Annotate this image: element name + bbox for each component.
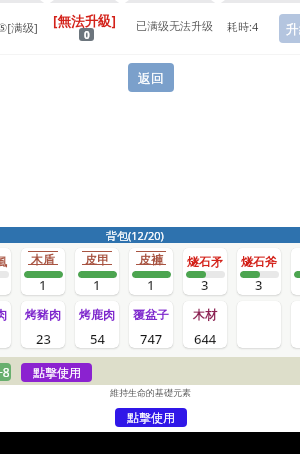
staticText: 樹皮風 — [0, 254, 7, 269]
button[interactable]: 燧石 — [291, 248, 300, 295]
staticText: 0 — [84, 28, 90, 41]
button[interactable]: 烤鹿肉 — [75, 301, 119, 348]
staticText: 皮甲 — [85, 252, 109, 267]
staticText: 木材 — [193, 307, 217, 322]
button[interactable]: 皮褲 — [129, 248, 173, 295]
staticText: 覆盆子 — [133, 307, 169, 322]
button[interactable]: 返回 — [128, 63, 174, 92]
staticText: 點擊使用 — [33, 365, 81, 380]
staticText: 已满级无法升级 — [136, 19, 213, 33]
button[interactable]: 木盾 — [21, 248, 65, 295]
staticText: 23 — [36, 330, 51, 348]
button[interactable]: 覆盆子 — [129, 301, 173, 348]
button[interactable]: 點擊使用 — [21, 363, 92, 382]
staticText: 烤牛肉 — [0, 307, 7, 322]
button[interactable]: 木材 — [183, 301, 227, 348]
staticText: 燧石斧 — [241, 254, 277, 269]
staticText: 皮褲 — [139, 252, 163, 267]
button[interactable]: 燧石斧 — [237, 248, 281, 295]
staticText: 點擊使用 — [127, 410, 175, 425]
staticText: 644 — [194, 330, 217, 348]
staticText: 747 — [140, 330, 163, 348]
button[interactable]: 點擊使用 — [115, 408, 187, 427]
staticText: 燧石矛 — [187, 254, 223, 269]
staticText: 木盾 — [31, 252, 55, 267]
button[interactable]: 燧石矛 — [183, 248, 227, 295]
staticText: 54 — [90, 330, 105, 348]
button[interactable] — [291, 301, 300, 348]
staticText: [無法升級] — [53, 12, 116, 30]
button[interactable]: 烤牛肉 — [0, 301, 11, 348]
staticText: 3 — [201, 276, 209, 294]
staticText: 1 — [39, 276, 47, 294]
button[interactable]: 樹皮風 — [0, 248, 11, 295]
staticText: 1 — [147, 276, 155, 294]
staticText: 升級 — [286, 21, 300, 37]
staticText: +8 — [0, 364, 10, 380]
staticText: ⑤[满级] — [0, 20, 38, 36]
staticText: 背包(12/20) — [106, 228, 164, 243]
staticText: 返回 — [138, 70, 164, 86]
staticText: 維持生命的基礎元素 — [110, 387, 191, 398]
button[interactable]: +8 — [0, 363, 11, 381]
button[interactable]: 皮甲 — [75, 248, 119, 295]
staticText: 耗時:4 — [227, 19, 259, 34]
staticText: 1 — [93, 276, 101, 294]
button[interactable]: 烤豬肉 — [21, 301, 65, 348]
staticText: 烤鹿肉 — [79, 307, 115, 322]
button[interactable]: 升級 — [279, 14, 300, 43]
staticText: 烤豬肉 — [25, 307, 61, 322]
staticText: 3 — [255, 276, 263, 294]
